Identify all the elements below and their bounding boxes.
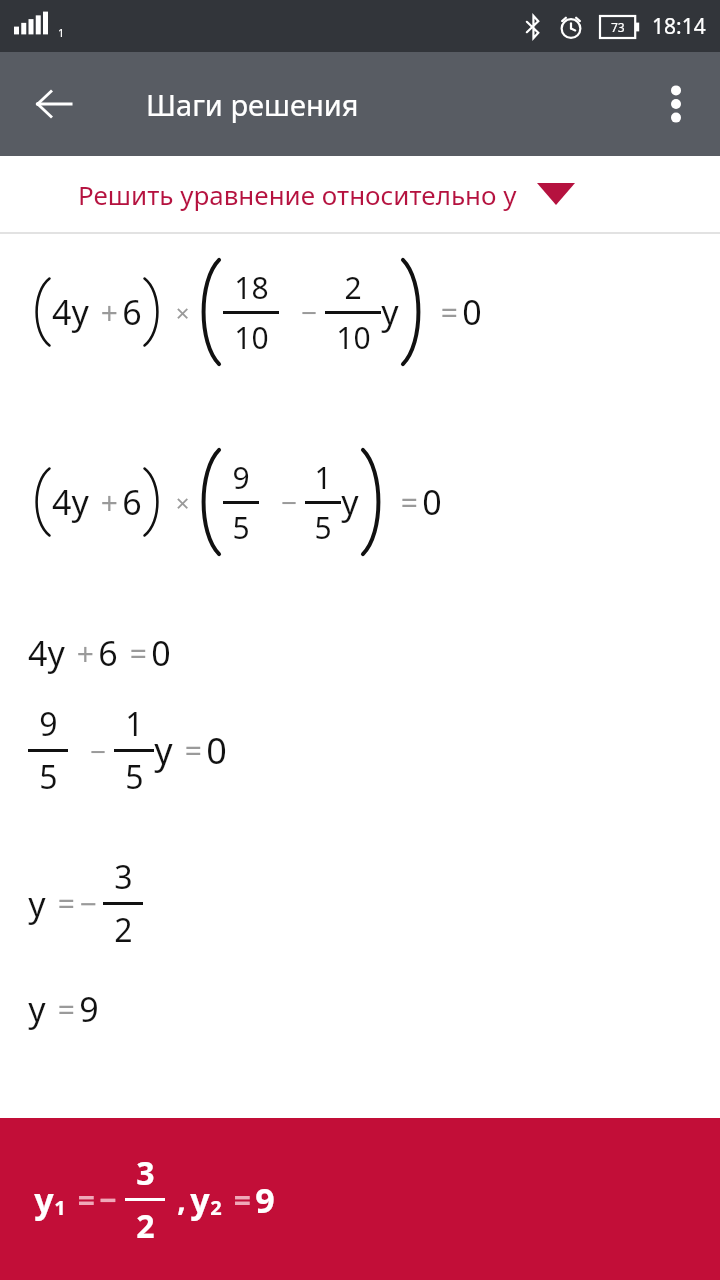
staticText: + [89,482,122,523]
staticText: × [166,296,193,329]
staticText: 0 [422,479,442,525]
staticText: y [34,1177,54,1223]
staticText: y [190,1177,210,1223]
staticText: 6 [122,289,142,335]
staticText: − [99,1179,117,1220]
button[interactable]: More options [648,76,704,132]
staticText: 18 [234,267,269,308]
staticText: = [46,883,79,924]
staticText: 1 [314,457,332,498]
staticText: 1 [125,702,144,746]
staticText: = [389,482,422,523]
staticText: = [46,989,79,1030]
staticText: y [154,726,173,775]
staticText: 10 [234,317,269,358]
staticText: = [222,1179,255,1220]
staticText: = [173,730,206,771]
staticText: 5 [314,507,332,548]
staticText: + [65,633,98,674]
staticText: 2 [344,267,362,308]
staticText: 9 [39,702,58,746]
staticText: = [66,1179,99,1220]
staticText: 9 [79,986,99,1032]
staticText: y [28,881,46,927]
button[interactable]: Решить уравнение относительно y [0,156,720,232]
staticText: Решить уравнение относительно y [78,177,517,212]
staticText: 73 [611,19,625,35]
staticText: 6 [98,630,118,676]
staticText: 1 [54,1194,66,1221]
staticText: 0 [151,630,171,676]
staticText: − [68,732,114,770]
staticText: , [165,1179,190,1220]
staticText: 2 [114,908,133,952]
staticText: y [381,289,399,335]
staticText: Шаги решения [146,85,359,124]
staticText: 2 [136,1204,155,1248]
staticText: 4y [28,630,65,676]
staticText: 3 [114,855,133,899]
staticText: = [118,633,151,674]
staticText: − [279,293,325,331]
staticText: y [341,479,359,525]
staticText: 10 [336,317,371,358]
staticText: 4y [52,289,89,335]
staticText: 18:14 [652,12,706,41]
staticText: 5 [125,755,144,799]
staticText: 1 [58,25,65,40]
staticText: = [429,292,462,333]
staticText: 4y [52,479,89,525]
button[interactable]: Back [22,72,86,136]
staticText: 3 [136,1151,155,1195]
staticText: 9 [232,457,250,498]
staticText: − [79,883,97,924]
staticText: y [28,986,46,1032]
staticText: − [259,483,305,521]
staticText: 0 [206,726,227,775]
staticText: + [89,292,122,333]
staticText: × [166,486,193,519]
staticText: 9 [255,1177,275,1223]
staticText: 5 [232,507,250,548]
staticText: 0 [462,289,482,335]
staticText: 6 [122,479,142,525]
staticText: 2 [210,1194,222,1221]
staticText: 5 [39,755,58,799]
